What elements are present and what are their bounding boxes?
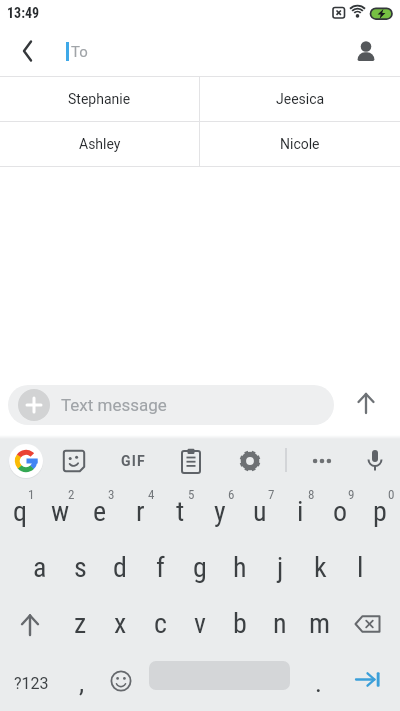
button[interactable]: o bbox=[320, 487, 360, 543]
staticText: 2 bbox=[68, 487, 75, 502]
button[interactable]: n bbox=[260, 599, 300, 655]
button[interactable]: e bbox=[80, 487, 120, 543]
button[interactable]: j bbox=[260, 543, 300, 599]
button[interactable]: a bbox=[20, 543, 60, 599]
staticText: . bbox=[315, 668, 322, 698]
staticText: e bbox=[93, 495, 107, 528]
staticText: 5 bbox=[188, 487, 195, 502]
button[interactable]: u bbox=[240, 487, 280, 543]
button[interactable]: q bbox=[0, 487, 40, 543]
button[interactable] bbox=[230, 435, 270, 487]
staticText: 4 bbox=[148, 487, 155, 502]
button[interactable]: Jeesica bbox=[200, 77, 400, 121]
button[interactable] bbox=[102, 655, 142, 711]
staticText: To bbox=[71, 43, 88, 61]
button[interactable]: , bbox=[62, 655, 102, 711]
button[interactable] bbox=[355, 435, 395, 487]
button[interactable] bbox=[340, 599, 400, 655]
button[interactable]: i bbox=[280, 487, 320, 543]
staticText: 13:49 bbox=[7, 5, 40, 21]
button[interactable]: Ashley bbox=[0, 122, 199, 166]
button[interactable]: GIF bbox=[113, 435, 153, 487]
staticText: j bbox=[277, 551, 284, 584]
button[interactable]: s bbox=[60, 543, 100, 599]
button[interactable] bbox=[54, 435, 94, 487]
staticText: n bbox=[273, 607, 287, 640]
staticText: m bbox=[309, 607, 331, 640]
button[interactable]: w bbox=[40, 487, 80, 543]
staticText: a bbox=[33, 551, 47, 584]
staticText: p bbox=[373, 495, 387, 528]
staticText: g bbox=[193, 551, 207, 584]
staticText: b bbox=[233, 607, 247, 640]
button[interactable] bbox=[0, 599, 60, 655]
staticText: ?123 bbox=[14, 674, 49, 693]
button[interactable]: y bbox=[200, 487, 240, 543]
button[interactable]: l bbox=[340, 543, 380, 599]
staticText: i bbox=[297, 495, 304, 528]
button[interactable]: k bbox=[300, 543, 340, 599]
staticText: d bbox=[113, 551, 127, 584]
staticText: k bbox=[314, 551, 327, 584]
staticText: u bbox=[253, 495, 267, 528]
staticText: f bbox=[156, 551, 165, 584]
button[interactable]: . bbox=[300, 655, 336, 711]
staticText: Text message bbox=[61, 395, 167, 415]
staticText: l bbox=[357, 551, 364, 584]
button[interactable]: v bbox=[180, 599, 220, 655]
button[interactable]: Text message bbox=[8, 385, 334, 425]
staticText: 8 bbox=[308, 487, 315, 502]
staticText: , bbox=[79, 668, 85, 698]
button[interactable]: z bbox=[60, 599, 100, 655]
staticText: t bbox=[176, 495, 185, 528]
button[interactable]: h bbox=[220, 543, 260, 599]
button[interactable]: ?123 bbox=[0, 655, 62, 711]
staticText: s bbox=[74, 551, 87, 584]
button[interactable]: x bbox=[100, 599, 140, 655]
staticText: 1 bbox=[28, 487, 35, 502]
button[interactable] bbox=[346, 26, 386, 76]
staticText: y bbox=[214, 495, 226, 528]
button[interactable]: Nicole bbox=[200, 122, 400, 166]
staticText: x bbox=[114, 607, 127, 640]
staticText: q bbox=[13, 495, 28, 528]
button[interactable]: m bbox=[300, 599, 340, 655]
staticText: 9 bbox=[348, 487, 355, 502]
staticText: Stephanie bbox=[68, 91, 131, 107]
staticText: w bbox=[51, 495, 70, 528]
staticText: GIF bbox=[121, 453, 146, 469]
button[interactable]: Stephanie bbox=[0, 77, 199, 121]
button[interactable]: f bbox=[140, 543, 180, 599]
button[interactable] bbox=[302, 435, 342, 487]
staticText: Nicole bbox=[280, 136, 320, 152]
button[interactable]: t bbox=[160, 487, 200, 543]
button[interactable] bbox=[8, 26, 48, 76]
staticText: r bbox=[136, 495, 145, 528]
button[interactable] bbox=[6, 435, 46, 487]
staticText: o bbox=[333, 495, 348, 528]
button[interactable]: r bbox=[120, 487, 160, 543]
staticText: Ashley bbox=[79, 136, 121, 152]
button[interactable]: p bbox=[360, 487, 400, 543]
staticText: h bbox=[233, 551, 247, 584]
staticText: 6 bbox=[228, 487, 235, 502]
staticText: z bbox=[74, 607, 87, 640]
staticText: 7 bbox=[268, 487, 275, 502]
staticText: Jeesica bbox=[276, 91, 325, 107]
staticText: 3 bbox=[108, 487, 115, 502]
button[interactable] bbox=[344, 655, 392, 711]
button[interactable]: b bbox=[220, 599, 260, 655]
button[interactable]: d bbox=[100, 543, 140, 599]
staticText: 0 bbox=[388, 487, 395, 502]
button[interactable] bbox=[171, 435, 211, 487]
button[interactable]: c bbox=[140, 599, 180, 655]
button[interactable] bbox=[346, 378, 386, 435]
staticText: v bbox=[194, 607, 206, 640]
button[interactable]: g bbox=[180, 543, 220, 599]
staticText: c bbox=[154, 607, 167, 640]
